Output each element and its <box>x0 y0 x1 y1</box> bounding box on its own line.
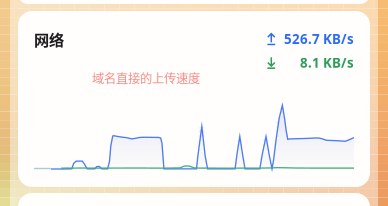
staticText: 网络 <box>34 28 64 50</box>
button[interactable]: 网络 <box>18 11 370 187</box>
staticText: 域名直接的上传速度 <box>92 69 200 87</box>
staticText: 526.7 KB/s <box>284 30 354 48</box>
staticText: 8.1 KB/s <box>300 54 354 71</box>
